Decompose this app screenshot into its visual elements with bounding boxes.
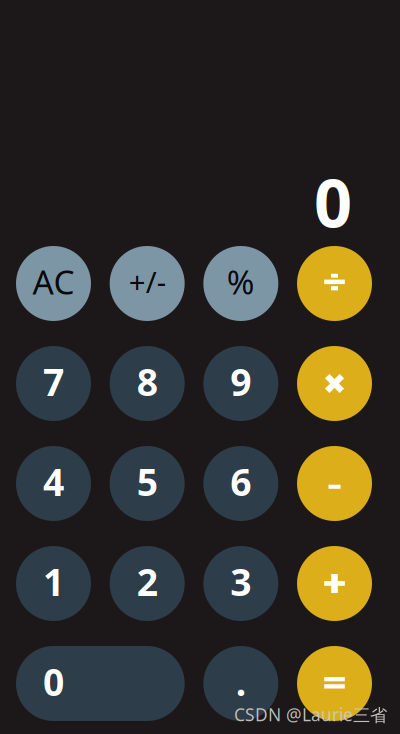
button[interactable]: Equals: [297, 646, 372, 721]
staticText: 7: [43, 357, 64, 406]
button[interactable]: Minus: [297, 446, 372, 521]
staticText: 0: [314, 157, 352, 246]
staticText: 2: [137, 557, 158, 606]
button[interactable]: 7: [16, 346, 91, 421]
button[interactable]: 4: [16, 446, 91, 521]
button[interactable]: +/-: [110, 246, 185, 321]
button[interactable]: %: [203, 246, 278, 321]
staticText: +/-: [129, 262, 166, 301]
button[interactable]: 9: [203, 346, 278, 421]
button[interactable]: 0: [16, 646, 185, 721]
staticText: CSDN @Laurie三省: [234, 703, 387, 726]
staticText: 0: [43, 657, 64, 706]
button[interactable]: 2: [110, 546, 185, 621]
staticText: 9: [230, 357, 251, 406]
staticText: AC: [32, 259, 74, 304]
button[interactable]: 1: [16, 546, 91, 621]
button[interactable]: 6: [203, 446, 278, 521]
staticText: 3: [230, 557, 251, 606]
button[interactable]: 8: [110, 346, 185, 421]
button[interactable]: 5: [110, 446, 185, 521]
staticText: .: [236, 657, 246, 706]
button[interactable]: Divide: [297, 246, 372, 321]
button[interactable]: .: [203, 646, 278, 721]
button[interactable]: Multiply: [297, 346, 372, 421]
staticText: 4: [43, 457, 64, 506]
staticText: 1: [43, 557, 64, 606]
staticText: 8: [137, 357, 158, 406]
staticText: %: [227, 259, 255, 304]
button[interactable]: AC: [16, 246, 91, 321]
button[interactable]: Plus: [297, 546, 372, 621]
staticText: 5: [137, 457, 158, 506]
staticText: 6: [230, 457, 251, 506]
button[interactable]: 3: [203, 546, 278, 621]
